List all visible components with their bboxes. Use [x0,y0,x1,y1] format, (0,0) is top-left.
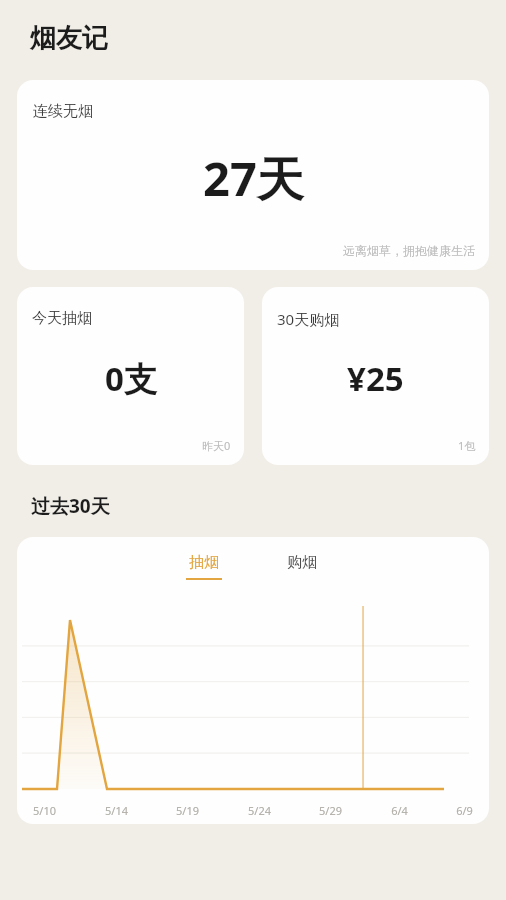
staticText: 远离烟草，拥抱健康生活 [343,243,475,258]
staticText: 5/24 [248,803,271,818]
staticText: 5/14 [105,803,128,818]
staticText: 1包 [458,438,476,453]
staticText: 连续无烟 [33,102,93,121]
button[interactable]: 今天抽烟 [17,287,244,465]
staticText: 昨天0 [202,438,231,453]
staticText: 购烟 [287,553,317,572]
button[interactable]: 连续无烟 [17,80,489,270]
staticText: 今天抽烟 [32,309,92,328]
button[interactable]: 抽烟 [180,551,228,582]
staticText: 5/29 [319,803,342,818]
staticText: 6/4 [391,803,408,818]
staticText: 6/9 [456,803,473,818]
staticText: 0支 [105,356,157,401]
staticText: 5/10 [33,803,56,818]
staticText: ¥25 [347,356,404,401]
staticText: 5/19 [176,803,199,818]
staticText: 27天 [203,146,304,210]
staticText: 抽烟 [189,553,219,572]
staticText: 30天购烟 [277,309,340,329]
button[interactable]: 30天购烟 [262,287,489,465]
staticText: 过去30天 [31,493,110,519]
button[interactable]: 购烟 [278,551,326,582]
staticText: 烟友记 [30,22,108,55]
